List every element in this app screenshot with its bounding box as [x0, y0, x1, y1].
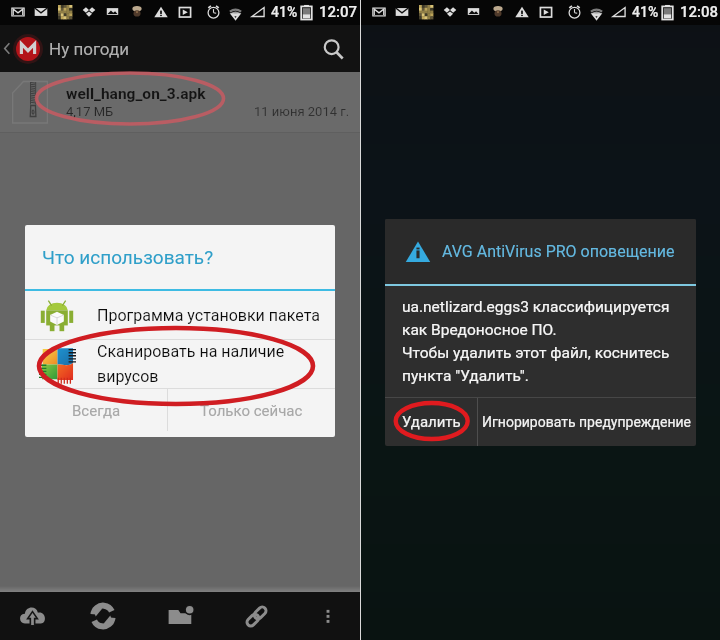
- staticText: well_hang_on_3.apk: [66, 85, 206, 103]
- staticText: Удалить: [402, 413, 461, 431]
- staticText: Всегда: [72, 402, 121, 420]
- button[interactable]: Refresh: [75, 592, 131, 640]
- button[interactable]: More options: [300, 592, 356, 640]
- button[interactable]: Удалить: [385, 398, 477, 446]
- button[interactable]: Upload: [4, 592, 60, 640]
- button[interactable]: Search: [316, 32, 350, 66]
- staticText: 41%: [271, 4, 298, 20]
- staticText: ua.netlizard.eggs3 классифицируется как …: [402, 298, 670, 385]
- button[interactable]: Программа установки пакета: [25, 291, 335, 339]
- staticText: Только сейчас: [200, 402, 303, 420]
- button[interactable]: Сканировать на наличие вирусов: [25, 340, 335, 388]
- button[interactable]: well_hang_on_3.apk: [0, 72, 360, 132]
- button[interactable]: Всегда: [25, 389, 167, 437]
- button[interactable]: New folder: [152, 592, 208, 640]
- staticText: 41%: [632, 4, 659, 20]
- staticText: 4,17 МБ: [66, 104, 114, 119]
- staticText: Программа установки пакета: [97, 306, 320, 325]
- button[interactable]: Link: [228, 592, 284, 640]
- staticText: 11 июня 2014 г.: [254, 104, 350, 119]
- staticText: Сканировать на наличие вирусов: [97, 342, 285, 386]
- staticText: AVG AntiVirus PRO оповещение: [442, 242, 675, 261]
- staticText: Ну погоди: [49, 39, 130, 59]
- staticText: 12:07: [319, 3, 358, 21]
- staticText: Что использовать?: [42, 246, 214, 268]
- button[interactable]: Ну погоди: [0, 25, 360, 72]
- button[interactable]: Игнорировать предупреждение: [478, 398, 696, 446]
- button[interactable]: Только сейчас: [168, 389, 335, 437]
- staticText: Игнорировать предупреждение: [482, 414, 692, 430]
- staticText: 12:08: [680, 3, 719, 21]
